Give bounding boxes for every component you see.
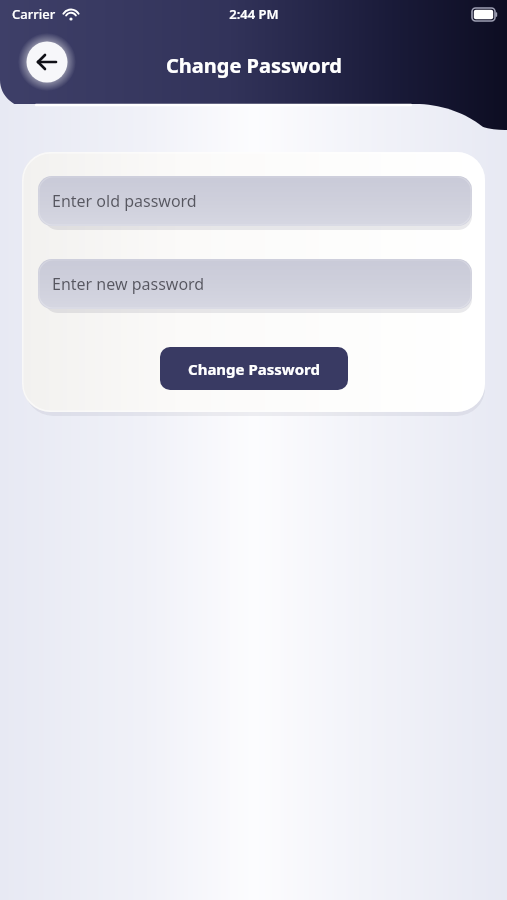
button[interactable]: Enter new password <box>38 259 472 309</box>
staticText: Change Password <box>188 359 320 379</box>
staticText: 2:44 PM <box>229 5 279 23</box>
button[interactable]: Enter old password <box>38 176 472 226</box>
button[interactable]: Back <box>18 33 76 91</box>
staticText: Change Password <box>166 52 342 79</box>
button[interactable]: Change Password <box>160 347 348 390</box>
staticText: Enter old password <box>52 190 197 212</box>
staticText: Carrier <box>12 5 56 23</box>
staticText: Enter new password <box>52 273 205 295</box>
